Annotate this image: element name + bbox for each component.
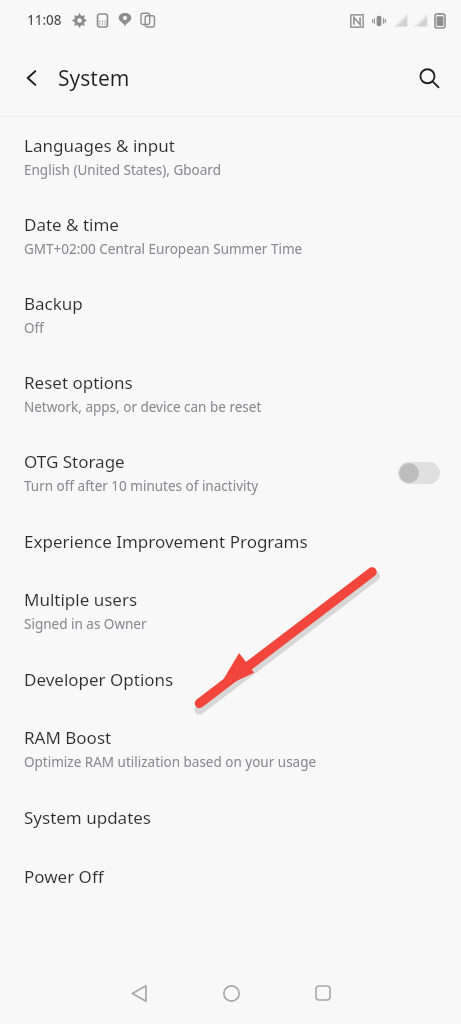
button[interactable]: Back [109, 963, 169, 1023]
staticText: 11:08 [27, 11, 62, 29]
button[interactable]: Recents [293, 963, 353, 1023]
staticText: Optimize RAM utilization based on your u… [24, 753, 317, 771]
button[interactable]: Power Off [0, 847, 461, 906]
staticText: Reset options [24, 371, 133, 394]
button[interactable]: Languages & input [0, 117, 461, 196]
button[interactable]: Developer Options [0, 650, 461, 709]
button[interactable]: Search [407, 56, 451, 100]
staticText: Date & time [24, 213, 119, 236]
staticText: English (United States), Gboard [24, 161, 221, 179]
button[interactable]: Home [201, 963, 261, 1023]
staticText: Multiple users [24, 588, 138, 611]
staticText: System [58, 64, 130, 93]
staticText: System updates [24, 806, 152, 829]
staticText: Turn off after 10 minutes of inactivity [24, 477, 259, 495]
button[interactable]: System updates [0, 788, 461, 847]
staticText: Signed in as Owner [24, 615, 147, 633]
staticText: GMT+02:00 Central European Summer Time [24, 240, 303, 258]
staticText: Backup [24, 292, 83, 315]
button[interactable]: RAM Boost [0, 709, 461, 788]
staticText: Network, apps, or device can be reset [24, 398, 262, 416]
button[interactable]: Multiple users [0, 571, 461, 650]
staticText: Developer Options [24, 668, 174, 691]
button[interactable]: Date & time [0, 196, 461, 275]
staticText: Languages & input [24, 134, 175, 157]
button[interactable]: OTG Storage toggle [398, 462, 440, 484]
staticText: RAM Boost [24, 726, 112, 749]
button[interactable]: OTG Storage [0, 433, 461, 512]
button[interactable]: Reset options [0, 354, 461, 433]
staticText: OTG Storage [24, 450, 125, 473]
button[interactable]: Backup [0, 275, 461, 354]
staticText: Power Off [24, 865, 104, 888]
button[interactable]: Back [10, 56, 54, 100]
button[interactable]: Experience Improvement Programs [0, 512, 461, 571]
staticText: Experience Improvement Programs [24, 530, 308, 553]
staticText: Off [24, 319, 44, 337]
